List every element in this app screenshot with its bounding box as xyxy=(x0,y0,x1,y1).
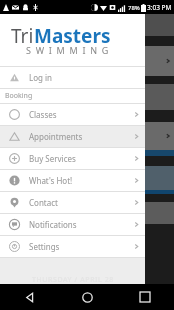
staticText: Notifications xyxy=(29,219,77,230)
staticText: Appointments xyxy=(29,131,83,142)
button[interactable]: Buy Services xyxy=(0,148,145,169)
staticText: Tri xyxy=(11,23,34,49)
staticText: Contact xyxy=(29,197,58,208)
button[interactable]: Back xyxy=(0,284,58,310)
staticText: Classes xyxy=(29,109,57,120)
staticText: S W I M M I N G xyxy=(26,44,110,56)
staticText: THURSDAY / APRIL 28 xyxy=(32,275,114,285)
staticText: Log in xyxy=(29,72,53,83)
button[interactable]: Notifications xyxy=(0,214,145,235)
button[interactable]: Log in xyxy=(0,67,145,88)
staticText: Booking xyxy=(5,91,33,101)
staticText: SUNDAY / MAY 01 xyxy=(37,296,108,306)
button[interactable]: Recent apps xyxy=(116,284,174,310)
button[interactable]: Settings xyxy=(0,236,145,257)
staticText: Buy Services xyxy=(29,153,76,164)
button[interactable]: Appointments xyxy=(0,126,145,147)
staticText: Masters xyxy=(34,23,111,49)
staticText: What's Hot! xyxy=(29,175,73,186)
staticText: Settings xyxy=(29,241,60,252)
staticText: 3:03 PM xyxy=(147,3,172,12)
button[interactable]: Classes xyxy=(0,104,145,125)
button[interactable]: Contact xyxy=(0,192,145,213)
staticText: 78% xyxy=(128,4,140,12)
button[interactable]: Home xyxy=(58,284,116,310)
button[interactable]: What's Hot! xyxy=(0,170,145,191)
